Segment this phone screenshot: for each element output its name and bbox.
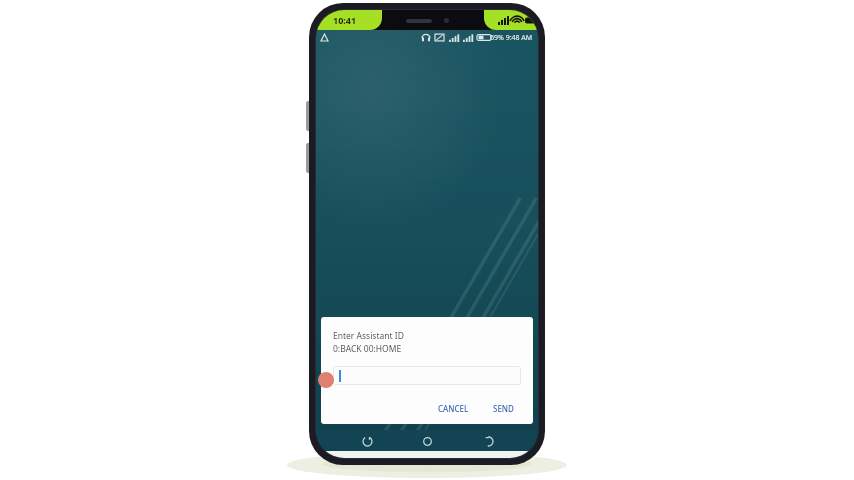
button[interactable]: CANCEL (431, 399, 476, 418)
staticText: 10:41 (333, 14, 357, 26)
button[interactable]: SEND (486, 399, 521, 418)
staticText: Enter Assistant ID (333, 330, 404, 342)
staticText: CANCEL (438, 403, 469, 414)
staticText: 0:BACK 00:HOME (333, 343, 402, 355)
staticText: 69% 9:48 AM (490, 33, 533, 43)
button[interactable]: Back (478, 431, 498, 451)
button[interactable]: Recents (357, 431, 377, 451)
button[interactable] (333, 366, 521, 385)
button[interactable]: Home (417, 431, 437, 451)
staticText: SEND (493, 403, 514, 414)
